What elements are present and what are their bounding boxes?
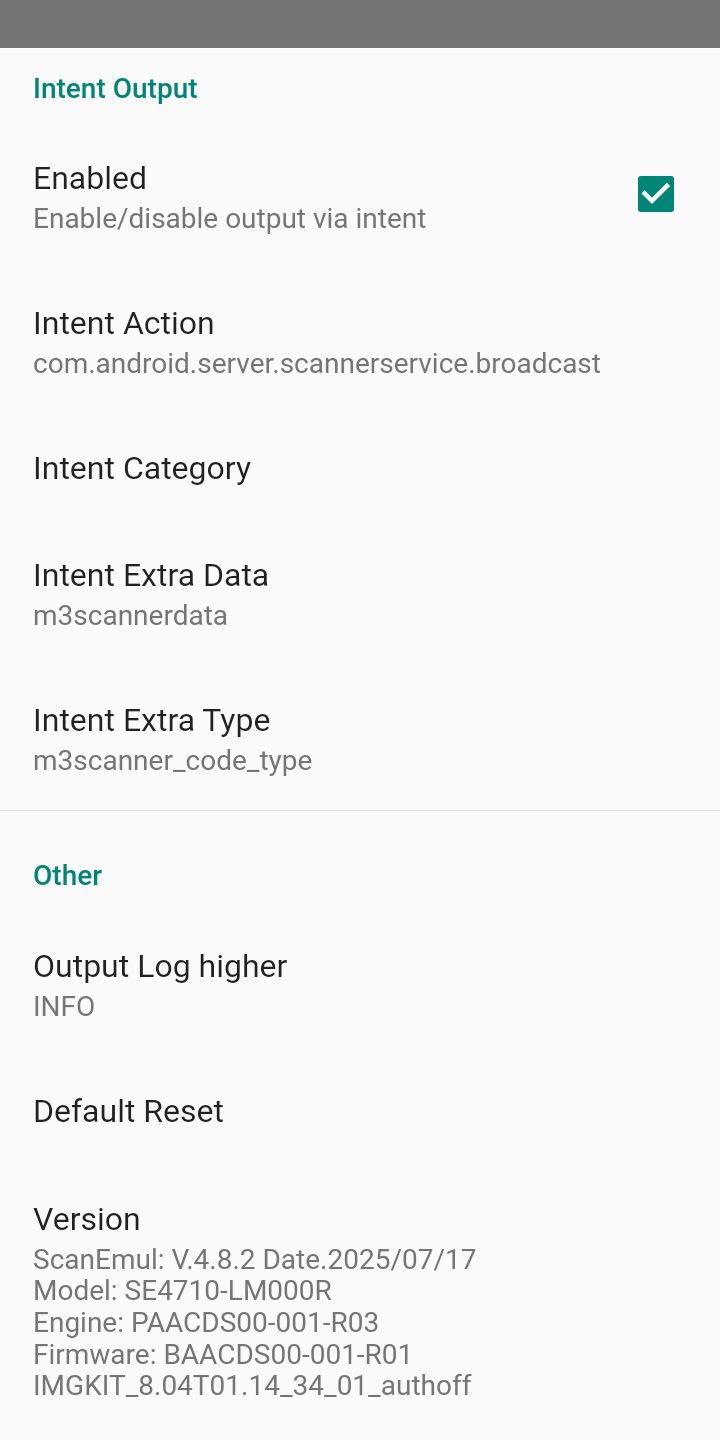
staticText: Firmware: BAACDS00-001-R01	[33, 1338, 414, 1371]
button[interactable]: Enabled	[0, 123, 720, 268]
staticText: ScanEmul: V.4.8.2 Date.2025/07/17	[33, 1243, 477, 1276]
staticText: INFO	[33, 990, 96, 1023]
staticText: Enabled	[33, 159, 148, 197]
staticText: Intent Output	[33, 72, 198, 105]
button[interactable]: Intent Extra Data	[0, 520, 720, 665]
staticText: Intent Extra Data	[33, 556, 270, 594]
staticText: Model: SE4710-LM000R	[33, 1274, 332, 1307]
staticText: Version	[33, 1200, 141, 1238]
staticText: m3scanner_code_type	[33, 744, 313, 777]
staticText: Intent Action	[33, 304, 215, 342]
staticText: m3scannerdata	[33, 599, 229, 632]
button[interactable]: Version	[0, 1164, 720, 1440]
staticText: Engine: PAACDS00-001-R03	[33, 1306, 380, 1339]
staticText: Intent Extra Type	[33, 701, 271, 739]
staticText: Enable/disable output via intent	[33, 202, 427, 235]
staticText: Other	[33, 859, 103, 892]
button[interactable]: Default Reset	[0, 1056, 720, 1164]
button[interactable]: Intent Extra Type	[0, 665, 720, 810]
button[interactable]: Intent Action	[0, 268, 720, 413]
staticText: com.android.server.scannerservice.broadc…	[33, 347, 601, 380]
staticText: Default Reset	[33, 1092, 224, 1130]
button[interactable]: Intent Category	[0, 413, 720, 520]
staticText: Output Log higher	[33, 947, 288, 985]
button[interactable]: Output Log higher	[0, 911, 720, 1056]
button[interactable]: Enabled, checked	[638, 176, 674, 212]
staticText: Intent Category	[33, 449, 252, 487]
staticText: IMGKIT_8.04T01.14_34_01_authoff	[33, 1369, 472, 1402]
